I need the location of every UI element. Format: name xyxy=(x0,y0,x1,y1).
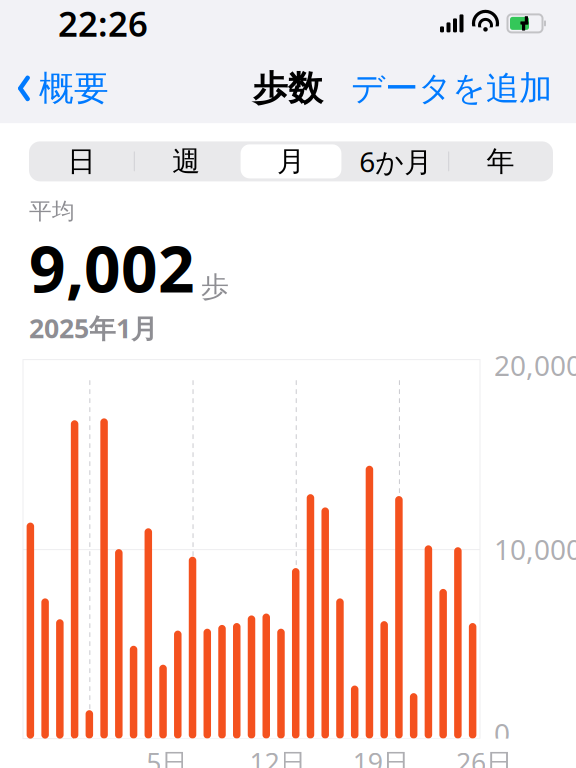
staticText: 20,000 xyxy=(494,347,576,384)
staticText: 19日 xyxy=(353,745,410,768)
staticText: 26日 xyxy=(456,745,513,768)
staticText: 歩数 xyxy=(253,67,323,110)
staticText: 月 xyxy=(277,144,305,179)
staticText: データを追加 xyxy=(351,68,552,109)
staticText: 概要 xyxy=(39,67,109,110)
staticText: 2025年1月 xyxy=(29,310,158,346)
staticText: 9,002 xyxy=(29,225,195,310)
button[interactable]: 年 xyxy=(448,141,553,181)
staticText: 平均 xyxy=(29,197,75,225)
staticText: 日 xyxy=(67,144,95,179)
staticText: 週 xyxy=(172,144,200,179)
button[interactable]: データを追加 xyxy=(351,60,576,117)
staticText: 12日 xyxy=(249,745,306,768)
button[interactable]: 6か月 xyxy=(343,141,448,181)
button[interactable]: 週 xyxy=(134,141,239,181)
staticText: 0 xyxy=(494,714,510,752)
button[interactable]: 日 xyxy=(29,141,134,181)
staticText: 年 xyxy=(487,144,515,179)
staticText: 歩 xyxy=(201,270,229,304)
staticText: 10,000 xyxy=(494,530,576,568)
button[interactable]: 月 xyxy=(239,141,343,181)
staticText: 6か月 xyxy=(359,143,432,180)
staticText: 5日 xyxy=(146,745,188,768)
button[interactable]: 概要 xyxy=(0,59,109,118)
staticText: 22:26 xyxy=(58,0,148,46)
